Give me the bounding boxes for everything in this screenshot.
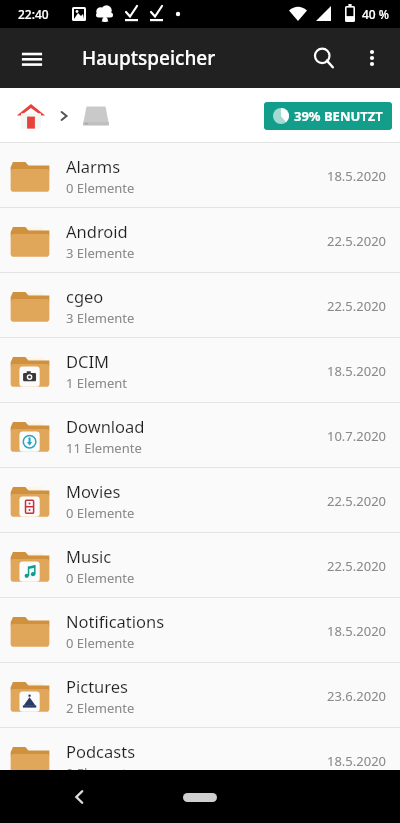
staticText: 0 Elemente (66, 569, 135, 587)
staticText: cgeo (66, 285, 104, 307)
staticText: 22.5.2020 (326, 297, 386, 315)
button[interactable]: cgeo (0, 273, 400, 338)
staticText: 18.5.2020 (326, 622, 386, 640)
button[interactable]: Search (300, 34, 348, 82)
button[interactable]: Download (0, 403, 400, 468)
staticText: 3 Elemente (66, 309, 135, 327)
staticText: 40 % (362, 6, 390, 22)
staticText: 22.5.2020 (326, 492, 386, 510)
staticText: 0 Elemente (66, 634, 135, 652)
button[interactable]: DCIM (0, 338, 400, 403)
staticText: 18.5.2020 (326, 362, 386, 380)
staticText: 18.5.2020 (326, 167, 386, 185)
button[interactable]: Alarms (0, 143, 400, 208)
staticText: 1 Element (66, 374, 127, 392)
staticText: Music (66, 545, 112, 567)
button[interactable]: Music (0, 533, 400, 598)
staticText: 0 Elemente (66, 764, 135, 782)
button[interactable]: Podcasts (0, 728, 400, 793)
staticText: Pictures (66, 675, 129, 697)
staticText: Hauptspeicher (82, 45, 216, 71)
staticText: Movies (66, 480, 121, 502)
button[interactable]: Movies (0, 468, 400, 533)
staticText: 11 Elemente (66, 439, 142, 457)
staticText: 18.5.2020 (326, 752, 386, 770)
button[interactable]: Back (60, 777, 100, 817)
button[interactable]: Home (174, 784, 226, 810)
staticText: 0 Elemente (66, 179, 135, 197)
button[interactable]: 39% BENUTZT (264, 102, 392, 130)
staticText: Download (66, 415, 145, 437)
button[interactable]: Pictures (0, 663, 400, 728)
staticText: Notifications (66, 610, 165, 632)
button[interactable]: More options (348, 34, 396, 82)
staticText: Podcasts (66, 740, 136, 762)
staticText: 23.6.2020 (326, 687, 386, 705)
staticText: 0 Elemente (66, 504, 135, 522)
button[interactable]: Internal storage (74, 94, 118, 138)
staticText: 39% BENUTZT (294, 107, 383, 125)
staticText: 22:40 (18, 6, 49, 22)
staticText: Alarms (66, 155, 121, 177)
staticText: 22.5.2020 (326, 232, 386, 250)
button[interactable]: Android (0, 208, 400, 273)
staticText: DCIM (66, 350, 110, 372)
staticText: 22.5.2020 (326, 557, 386, 575)
staticText: 2 Elemente (66, 699, 135, 717)
staticText: 10.7.2020 (326, 427, 386, 445)
button[interactable]: Notifications (0, 598, 400, 663)
button[interactable]: Home (10, 95, 52, 137)
staticText: Android (66, 220, 128, 242)
staticText: 3 Elemente (66, 244, 135, 262)
button[interactable]: Menu (8, 34, 56, 82)
